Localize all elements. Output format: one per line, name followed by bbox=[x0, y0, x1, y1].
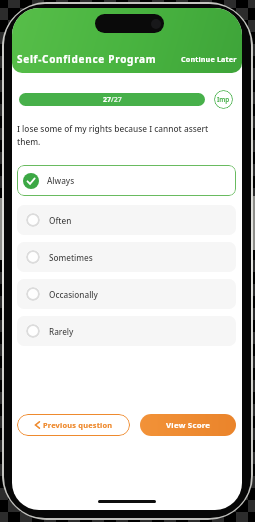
button[interactable]: Always bbox=[17, 165, 236, 196]
staticText: I lose some of my rights because I canno… bbox=[17, 123, 209, 148]
button[interactable]: Imp bbox=[214, 90, 233, 109]
button[interactable]: Often bbox=[17, 205, 236, 235]
staticText: Imp bbox=[217, 95, 230, 104]
button[interactable]: Occasionally bbox=[17, 279, 236, 309]
button[interactable]: Rarely bbox=[17, 316, 236, 346]
staticText: Occasionally bbox=[49, 289, 98, 300]
staticText: Self-Confidence Program bbox=[17, 52, 157, 66]
staticText: Previous question bbox=[43, 420, 113, 430]
button[interactable]: Sometimes bbox=[17, 242, 236, 272]
staticText: Continue Later bbox=[181, 54, 237, 64]
staticText: 27/27 bbox=[103, 95, 122, 105]
staticText: Often bbox=[49, 215, 72, 226]
staticText: Rarely bbox=[49, 326, 74, 337]
button[interactable]: Continue Later bbox=[181, 54, 237, 64]
staticText: View Score bbox=[166, 420, 211, 431]
staticText: Always bbox=[47, 175, 75, 186]
button[interactable]: View Score bbox=[140, 414, 236, 436]
staticText: Sometimes bbox=[49, 252, 93, 263]
button[interactable]: Previous question bbox=[17, 414, 130, 436]
